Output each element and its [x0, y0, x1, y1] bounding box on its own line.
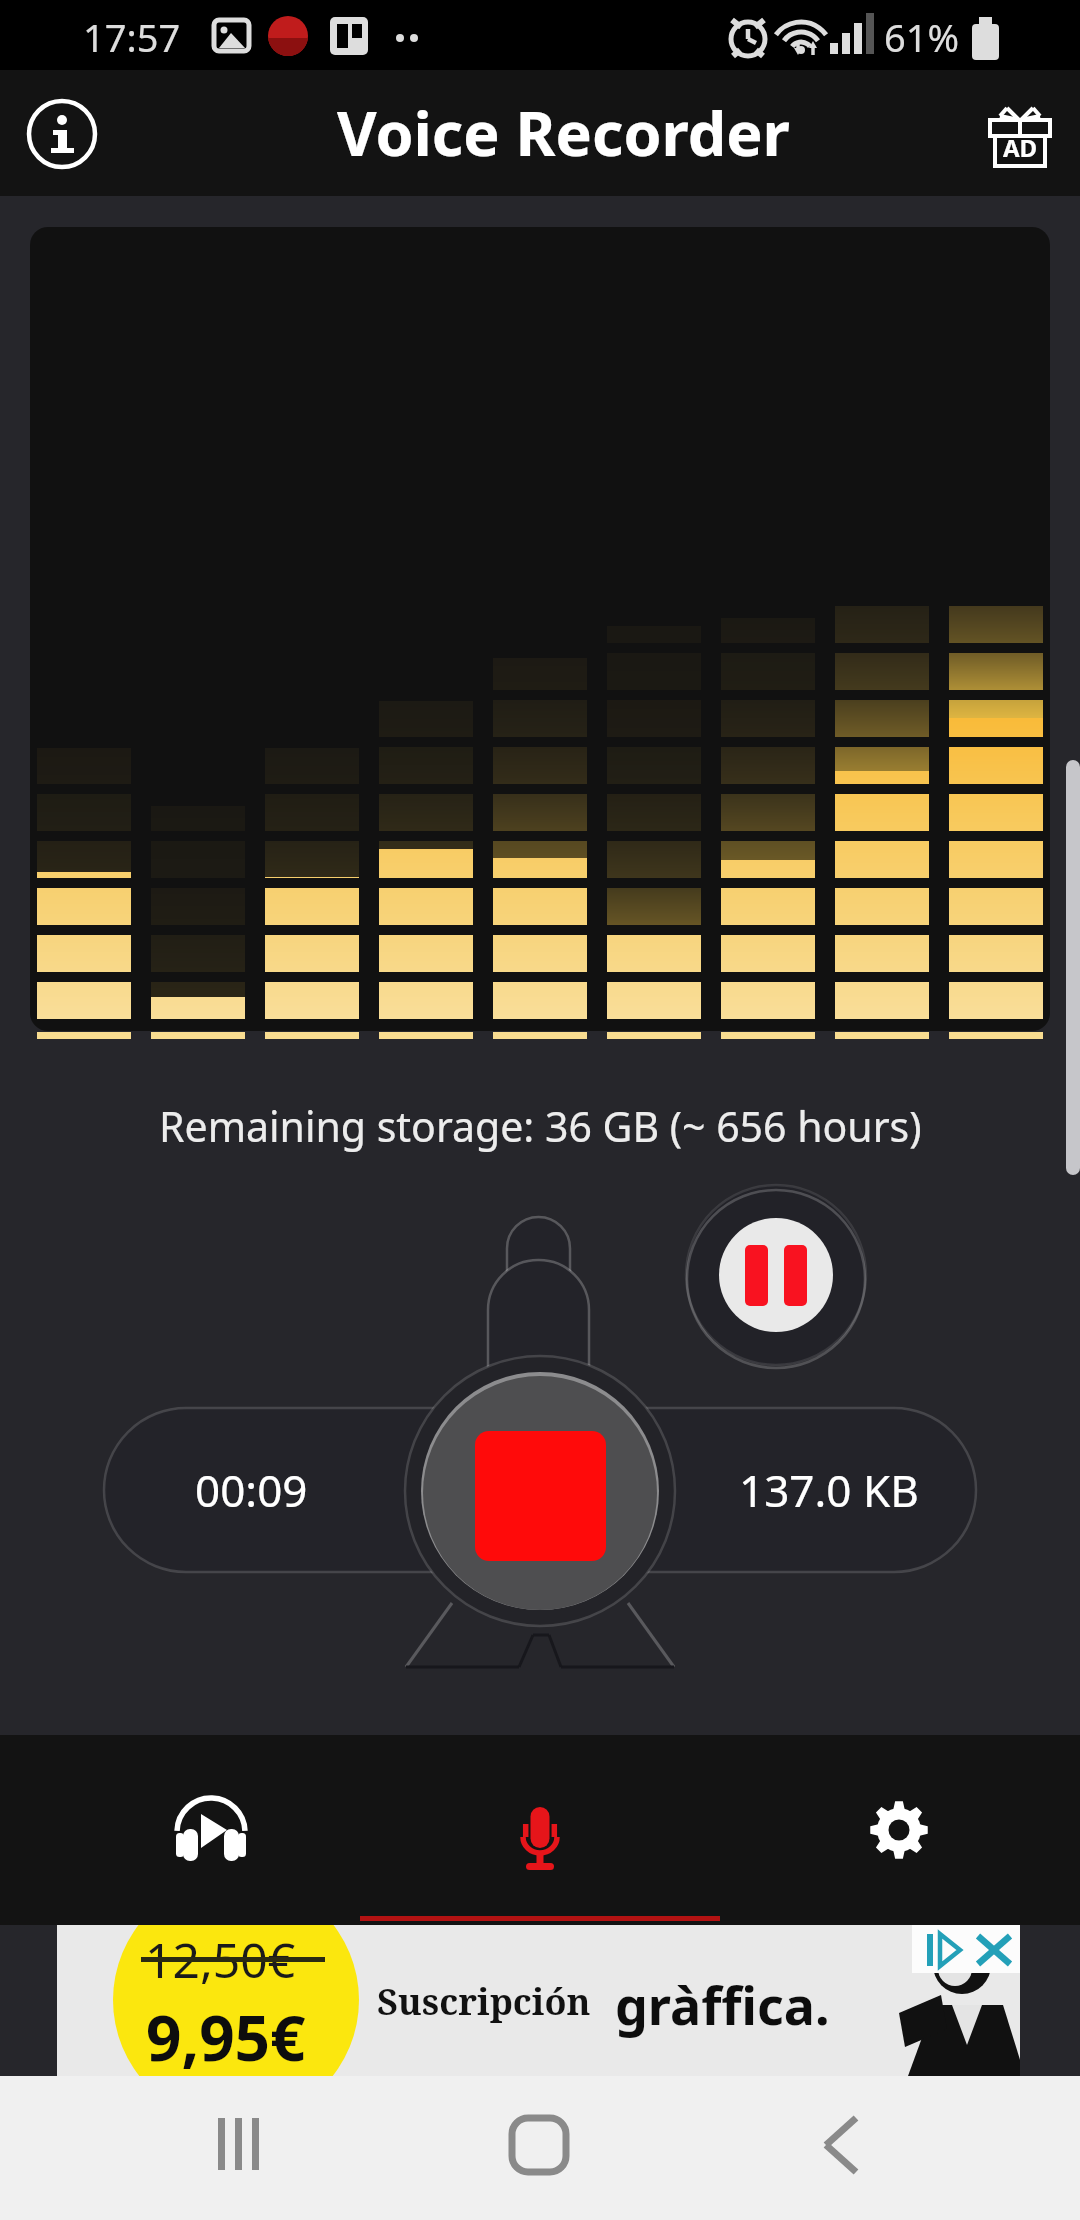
button[interactable]: Info	[18, 90, 106, 178]
staticText: 61%	[884, 11, 960, 63]
staticText: 12,50€	[145, 1927, 296, 1992]
staticText: 17:57	[83, 11, 181, 63]
button[interactable]: Play recordings	[0, 1735, 360, 1925]
staticText: Voice Recorder	[337, 91, 790, 174]
staticText: 00:09	[195, 1460, 308, 1520]
button[interactable]: Pause	[686, 1185, 866, 1365]
button[interactable]: 00:09	[86, 1408, 416, 1572]
staticText: AD	[1003, 131, 1038, 164]
staticText: Remaining storage: 36 GB (~ 656 hours)	[159, 1098, 922, 1154]
staticText: 9,95€	[146, 1995, 306, 2076]
button[interactable]: Settings	[720, 1735, 1080, 1925]
staticText: Suscripción	[377, 1977, 591, 2026]
button[interactable]: Stop recording	[405, 1356, 675, 1626]
button[interactable]: Remove ads	[976, 89, 1064, 177]
staticText: 137.0 KB	[739, 1460, 919, 1520]
button[interactable]: Record	[360, 1735, 720, 1925]
button[interactable]: 137.0 KB	[664, 1408, 994, 1572]
staticText: gràffica.	[615, 1969, 830, 2040]
button[interactable]: Advertisement	[57, 1925, 1020, 2076]
